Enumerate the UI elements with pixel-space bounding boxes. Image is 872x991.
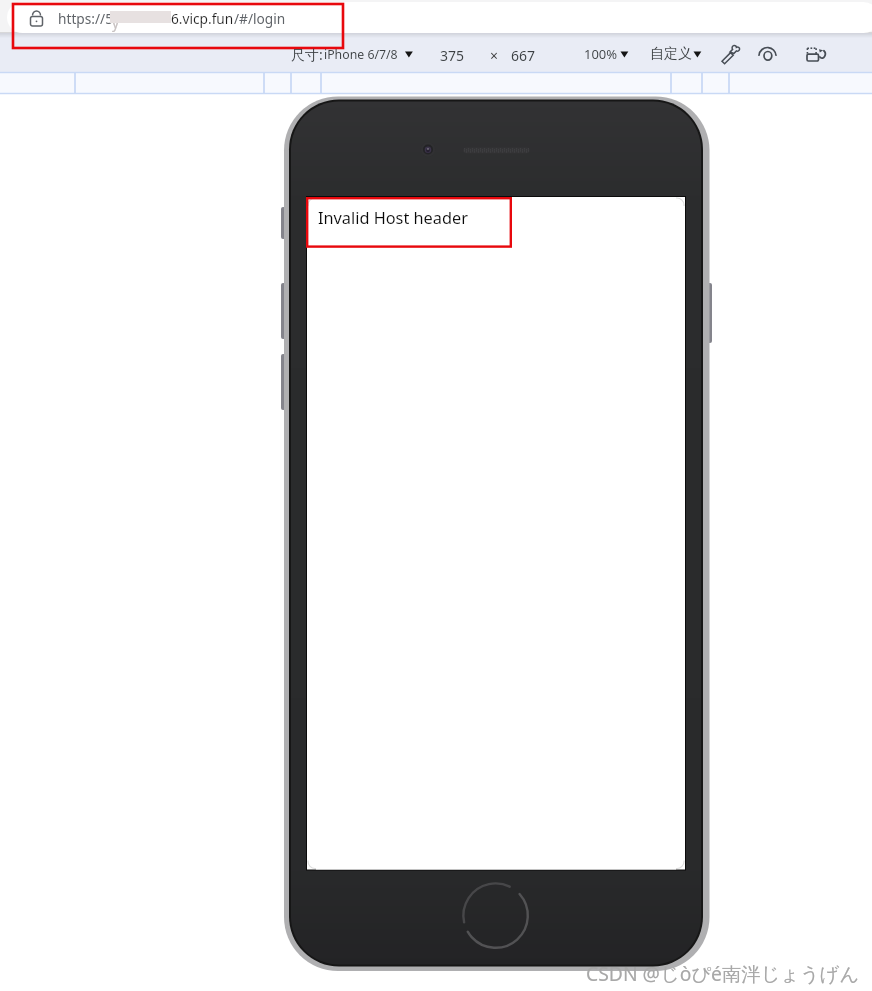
staticText: Invalid Host header (318, 207, 468, 229)
staticText: × (490, 46, 499, 65)
button[interactable]: Show media queries (757, 45, 779, 63)
button[interactable]: https://5 (58, 9, 113, 28)
button[interactable]: Rotate (804, 45, 828, 63)
button[interactable]: 自定义 (650, 44, 692, 64)
button[interactable]: 100% (584, 44, 618, 64)
button[interactable]: Site information (26, 7, 47, 29)
staticText: /#/login (234, 9, 286, 28)
button[interactable]: iPhone 6/7/8 (324, 44, 398, 64)
staticText: 6.vicp.fun (171, 9, 234, 28)
staticText: iPhone 6/7/8 (324, 46, 398, 63)
staticText: 尺寸: (291, 45, 323, 64)
button[interactable]: 尺寸: (291, 44, 323, 64)
button[interactable]: Color picker (721, 44, 741, 64)
staticText: 667 (511, 46, 536, 65)
staticText: y (112, 13, 119, 32)
staticText: 375 (440, 46, 465, 65)
staticText: https://5 (58, 9, 113, 28)
staticText: 100% (584, 45, 618, 63)
staticText: 自定义 (650, 45, 692, 63)
staticText: CSDN @じòぴé南泮じょうげん (586, 960, 860, 986)
